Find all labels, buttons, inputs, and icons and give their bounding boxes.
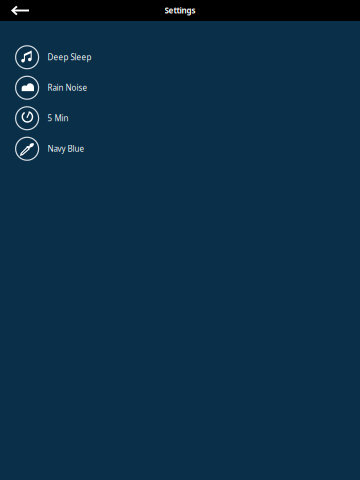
staticText: Rain Noise <box>48 82 88 93</box>
button[interactable]: 5 Min <box>0 103 360 133</box>
staticText: 5 Min <box>48 113 69 123</box>
button[interactable]: Back <box>0 0 37 21</box>
staticText: Navy Blue <box>48 143 85 154</box>
button[interactable]: Rain Noise <box>0 72 360 103</box>
staticText: Deep Sleep <box>48 52 92 62</box>
button[interactable]: Navy Blue <box>0 133 360 164</box>
button[interactable]: Deep Sleep <box>0 42 360 72</box>
staticText: Settings <box>164 5 195 16</box>
